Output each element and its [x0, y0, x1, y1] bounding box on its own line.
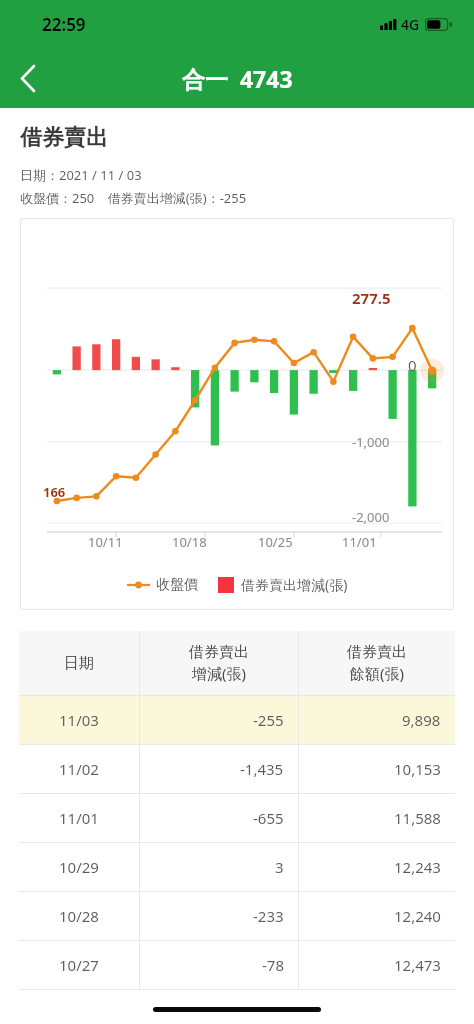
- staticText: 10/29: [59, 857, 99, 877]
- button[interactable]: 11/01: [19, 794, 455, 842]
- staticText: 借券賣出增減(張): [241, 575, 348, 594]
- staticText: -1,000: [352, 433, 390, 451]
- staticText: -655: [253, 808, 284, 828]
- staticText: 11/01: [342, 533, 377, 551]
- staticText: 10/25: [258, 533, 293, 551]
- staticText: 日期：2021 / 11 / 03: [20, 166, 142, 184]
- staticText: 10/28: [59, 906, 99, 926]
- button[interactable]: 10/28: [19, 892, 455, 940]
- staticText: 借券賣出 增減(張): [189, 643, 249, 683]
- staticText: 10/27: [59, 955, 99, 975]
- staticText: 166: [43, 483, 66, 501]
- staticText: -2,000: [352, 508, 390, 526]
- staticText: 277.5: [352, 288, 391, 308]
- staticText: 12,240: [394, 906, 441, 926]
- staticText: -78: [262, 955, 284, 975]
- button[interactable]: 11/02: [19, 745, 455, 793]
- staticText: -255: [253, 710, 284, 730]
- staticText: 3: [275, 857, 284, 877]
- staticText: 收盤價: [156, 576, 198, 594]
- button[interactable]: 11/03: [19, 696, 455, 744]
- button[interactable]: Back: [0, 48, 54, 108]
- staticText: -1,435: [240, 759, 284, 779]
- staticText: 收盤價：250 借券賣出增減(張)：-255: [20, 189, 247, 207]
- button[interactable]: 10/29: [19, 843, 455, 891]
- staticText: 10/11: [88, 533, 123, 551]
- staticText: 11/03: [59, 710, 99, 730]
- staticText: 11,588: [394, 808, 441, 828]
- staticText: 合一 4743: [182, 63, 293, 94]
- staticText: 12,473: [394, 955, 441, 975]
- staticText: 9,898: [402, 710, 441, 730]
- staticText: 11/02: [59, 759, 99, 779]
- staticText: 0: [408, 355, 417, 375]
- staticText: 4G: [401, 15, 420, 34]
- staticText: 借券賣出 餘額(張): [347, 643, 407, 683]
- staticText: 10,153: [394, 759, 441, 779]
- staticText: 借券賣出: [20, 124, 108, 152]
- button[interactable]: 10/27: [19, 941, 455, 989]
- staticText: -233: [253, 906, 284, 926]
- staticText: 10/18: [172, 533, 207, 551]
- staticText: 日期: [64, 654, 94, 673]
- staticText: 22:59: [42, 13, 86, 36]
- staticText: 11/01: [59, 808, 99, 828]
- staticText: 12,243: [394, 857, 441, 877]
